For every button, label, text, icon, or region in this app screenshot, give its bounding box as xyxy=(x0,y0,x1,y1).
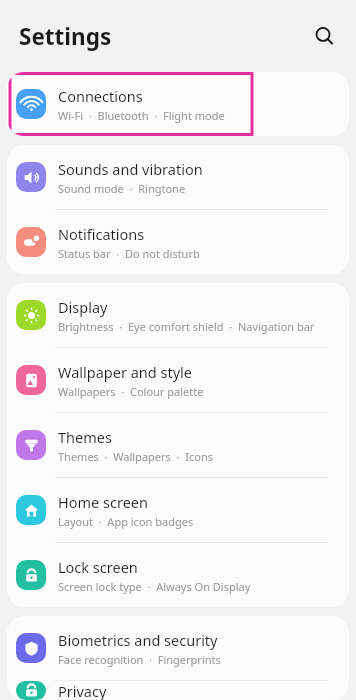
staticText: Brightness · Eye comfort shield · Naviga… xyxy=(58,319,315,334)
staticText: Privacy xyxy=(58,681,107,700)
staticText: Settings xyxy=(19,21,112,52)
staticText: Screen lock type · Always On Display xyxy=(58,579,251,594)
button[interactable]: Home screen xyxy=(7,478,349,542)
button[interactable]: Biometrics and security xyxy=(7,616,349,680)
button[interactable]: Wallpaper and style xyxy=(7,348,349,412)
staticText: Wallpaper and style xyxy=(58,362,192,382)
staticText: Sound mode · Ringtone xyxy=(58,181,186,196)
button[interactable]: Lock screen xyxy=(7,543,349,607)
staticText: Biometrics and security xyxy=(58,630,218,650)
staticText: Display xyxy=(58,297,108,317)
staticText: Wallpapers · Colour palette xyxy=(58,384,204,399)
button[interactable]: Connections xyxy=(7,72,349,136)
staticText: Layout · App icon badges xyxy=(58,514,194,529)
staticText: Sounds and vibration xyxy=(58,159,203,179)
staticText: Connections xyxy=(58,86,143,106)
button[interactable]: Sounds and vibration xyxy=(7,145,349,209)
button[interactable]: Privacy xyxy=(7,681,349,700)
button[interactable]: Notifications xyxy=(7,210,349,274)
staticText: Themes · Wallpapers · Icons xyxy=(58,449,213,464)
button[interactable]: Display xyxy=(7,283,349,347)
staticText: Lock screen xyxy=(58,557,138,577)
button[interactable]: Themes xyxy=(7,413,349,477)
button[interactable]: Search xyxy=(302,14,346,58)
staticText: Status bar · Do not disturb xyxy=(58,246,200,261)
staticText: Wi-Fi · Bluetooth · Flight mode xyxy=(58,108,225,123)
staticText: Home screen xyxy=(58,492,148,512)
staticText: Face recognition · Fingerprints xyxy=(58,652,221,667)
staticText: Themes xyxy=(58,427,112,447)
staticText: Notifications xyxy=(58,224,145,244)
